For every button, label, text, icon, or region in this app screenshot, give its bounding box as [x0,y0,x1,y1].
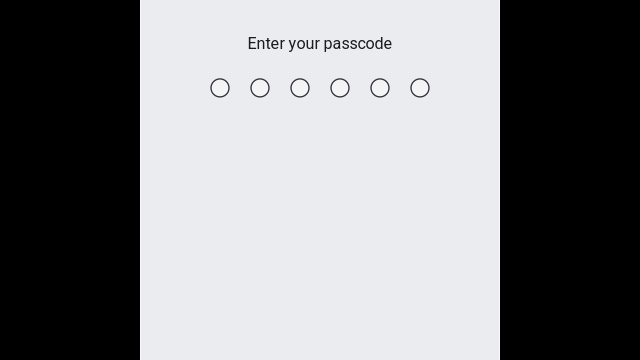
staticText: Enter your passcode [247,34,392,53]
button[interactable]: Passcode [211,79,429,97]
